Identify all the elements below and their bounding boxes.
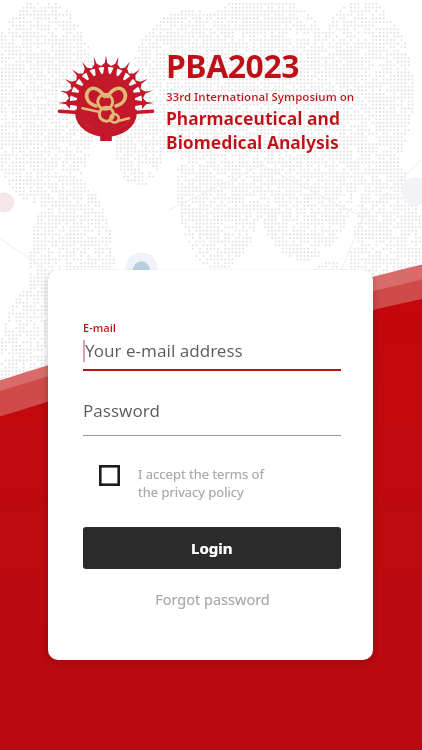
staticText: Your e-mail address [85,339,243,362]
staticText: Pharmaceutical and [166,106,340,130]
button[interactable]: Password [83,399,341,422]
staticText: Biomedical Analysis [166,130,339,154]
staticText: E-mail [83,320,116,335]
staticText: I accept the terms of [138,465,264,483]
button[interactable]: I accept the terms of [83,465,341,501]
staticText: Forgot password [155,589,270,609]
staticText: Password [83,399,160,422]
staticText: Login [191,538,233,558]
staticText: PBA2023 [166,44,300,88]
staticText: the privacy policy [138,483,244,501]
button[interactable]: Login [83,527,341,569]
button[interactable]: Forgot password [83,589,341,609]
staticText: 33rd International Symposium on [166,89,355,105]
button[interactable]: Your e-mail address [83,339,341,362]
